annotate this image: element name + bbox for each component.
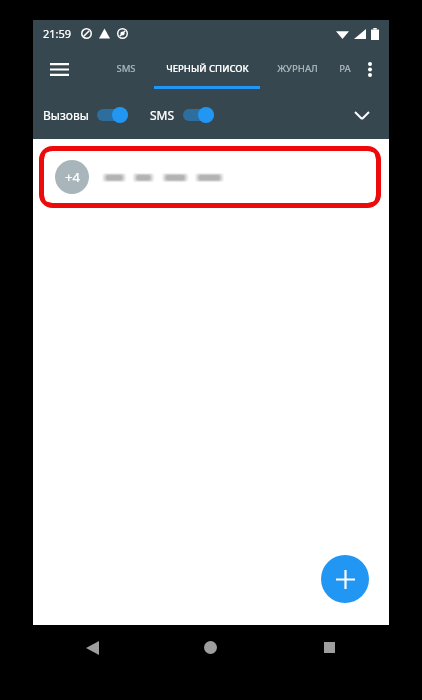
button[interactable]: More options (354, 53, 386, 85)
staticText: РА (339, 62, 351, 75)
button[interactable]: Expand (347, 100, 377, 130)
staticText: +4 (65, 168, 80, 186)
button[interactable]: Navigation menu (39, 49, 79, 89)
button[interactable]: Add to blacklist (321, 555, 369, 603)
staticText: 21:59 (43, 26, 72, 41)
button[interactable]: Back (33, 625, 151, 670)
button[interactable]: РА (331, 47, 359, 90)
button[interactable]: SMS (150, 107, 214, 123)
button[interactable]: Home (151, 625, 270, 670)
button[interactable]: ЧЕРНЫЙ СПИСОК (151, 47, 263, 90)
button[interactable]: SMS (101, 47, 151, 90)
staticText: SMS (150, 107, 175, 123)
button[interactable]: Вызовы (43, 107, 128, 123)
button[interactable]: ЖУРНАЛ (263, 47, 331, 90)
button[interactable]: +4 (45, 152, 375, 202)
staticText: SMS (116, 62, 136, 75)
button[interactable]: Recent apps (270, 625, 389, 670)
staticText: ЧЕРНЫЙ СПИСОК (166, 62, 249, 75)
staticText: ЖУРНАЛ (277, 62, 318, 75)
staticText: Вызовы (43, 107, 89, 123)
